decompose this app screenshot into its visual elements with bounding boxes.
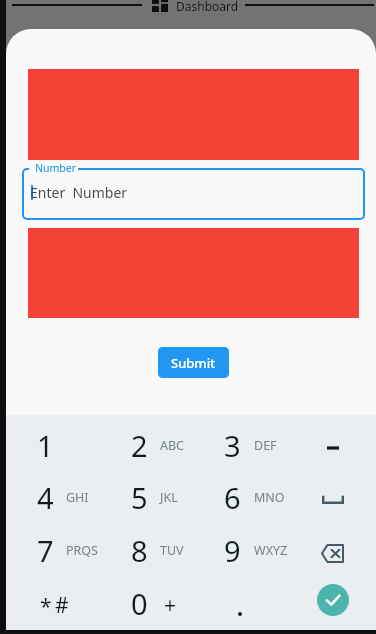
staticText: Number [35,161,77,175]
button[interactable]: 2 [94,419,188,471]
button[interactable]: 7 [0,524,94,577]
staticText: JKL [160,489,178,506]
staticText: Submit [171,354,216,372]
button[interactable]: Confirm [282,577,376,630]
staticText: 7 [37,531,54,570]
staticText: 6 [224,478,241,517]
button[interactable]: 5 [94,471,188,524]
staticText: 4 [37,478,54,517]
staticText: # [55,591,69,620]
staticText: Enter Number [30,183,128,202]
staticText: Dashboard [176,0,239,14]
staticText: PRQS [66,542,98,559]
button[interactable]: 4 [0,471,94,524]
staticText: WXYZ [254,542,288,559]
button[interactable]: 6 [188,471,282,524]
staticText: 3 [224,426,241,465]
button[interactable]: 3 [188,419,282,471]
staticText: 1 [37,426,54,465]
staticText: MNO [254,489,285,506]
staticText: 9 [224,531,241,570]
button[interactable]: Confirm [317,584,349,616]
button[interactable]: * [0,577,94,630]
button[interactable]: 0 [94,577,188,630]
other: Dash [327,446,339,450]
staticText: + [164,591,177,620]
staticText: * [40,592,52,621]
staticText: GHI [66,489,89,506]
staticText: 8 [131,531,148,570]
staticText: 2 [131,426,148,465]
other: Space [322,497,344,504]
button[interactable]: Submit [158,347,229,378]
button[interactable]: Backspace [282,524,376,577]
button[interactable]: Dash [282,419,376,471]
staticText: DEF [254,437,277,454]
button[interactable]: Space [282,471,376,524]
staticText: ABC [160,437,185,454]
button[interactable]: 9 [188,524,282,577]
button[interactable]: 8 [94,524,188,577]
button[interactable] [188,577,282,630]
other: Backspace [321,544,344,563]
staticText: TUV [160,542,184,559]
button[interactable]: 1 [0,419,94,471]
staticText: 5 [131,478,148,517]
staticText: 0 [131,584,148,623]
